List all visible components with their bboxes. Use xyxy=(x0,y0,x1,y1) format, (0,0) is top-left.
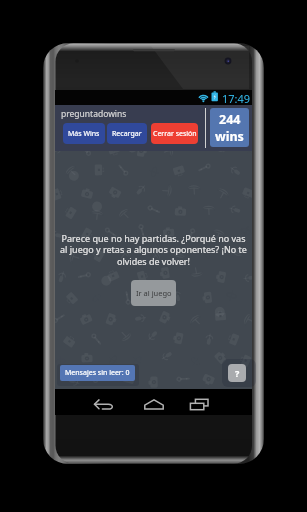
staticText: Recargar xyxy=(112,129,142,139)
staticText: Parece que no hay partidas. ¿Porqué no v… xyxy=(60,232,247,268)
staticText: preguntadowins xyxy=(61,108,127,120)
staticText: Cerrar sesión xyxy=(153,129,197,139)
button[interactable]: Cerrar sesión xyxy=(151,123,198,144)
staticText: 244 xyxy=(219,111,241,128)
button[interactable]: 244 xyxy=(210,108,249,147)
staticText: Más Wins xyxy=(68,129,100,139)
button[interactable]: Más Wins xyxy=(63,123,105,144)
button[interactable]: Help xyxy=(228,364,246,382)
button[interactable]: Back xyxy=(90,389,118,415)
staticText: Ir al juego xyxy=(136,288,172,298)
button[interactable]: Home xyxy=(140,389,168,415)
staticText: ? xyxy=(235,367,240,379)
staticText: Mensajes sin leer: 0 xyxy=(65,368,130,378)
button[interactable]: Mensajes sin leer: 0 xyxy=(60,365,135,381)
staticText: wins xyxy=(215,128,244,145)
staticText: 17:49 xyxy=(222,91,251,106)
button[interactable]: Recents xyxy=(185,389,213,415)
button[interactable]: Recargar xyxy=(107,123,147,144)
button[interactable]: Ir al juego xyxy=(131,280,176,306)
